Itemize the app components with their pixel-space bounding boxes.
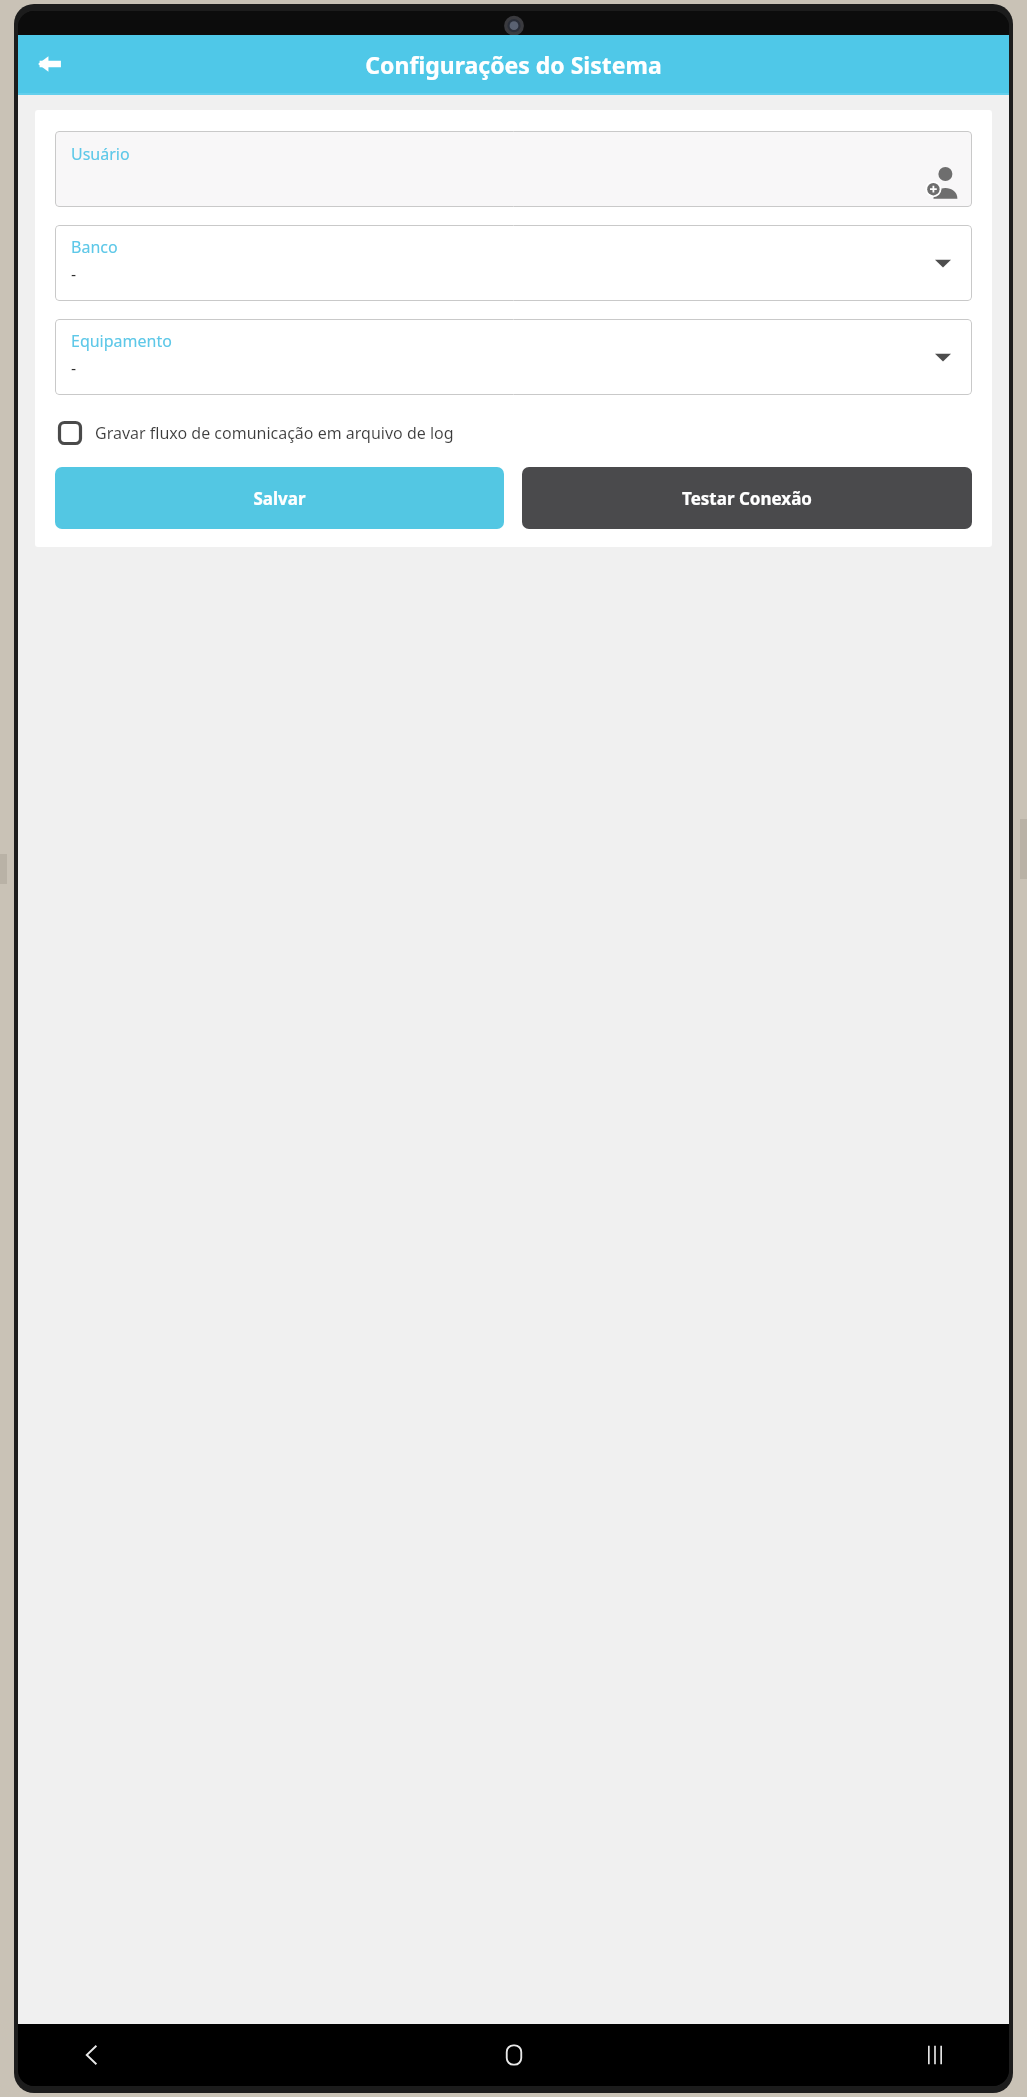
button[interactable]: Back (64, 2027, 120, 2083)
staticText: Usuário (71, 143, 130, 165)
staticText: Testar Conexão (682, 487, 812, 510)
button[interactable]: Home (486, 2027, 542, 2083)
staticText: Equipamento (71, 330, 172, 352)
button[interactable]: Equipamento (55, 319, 972, 395)
staticText: - (71, 263, 77, 285)
button[interactable]: Testar Conexão (522, 467, 972, 529)
button[interactable]: Gravar fluxo de comunicação em arquivo d… (55, 411, 972, 455)
button[interactable]: Recent apps (907, 2027, 963, 2083)
button[interactable]: Salvar (55, 467, 504, 529)
button[interactable]: Back (26, 40, 74, 88)
button[interactable]: Banco (55, 225, 972, 301)
button[interactable]: Usuário (55, 131, 972, 207)
staticText: Gravar fluxo de comunicação em arquivo d… (95, 422, 454, 444)
staticText: Salvar (253, 487, 306, 510)
staticText: Configurações do Sistema (74, 49, 953, 80)
staticText: - (71, 357, 77, 379)
staticText: Banco (71, 236, 118, 258)
